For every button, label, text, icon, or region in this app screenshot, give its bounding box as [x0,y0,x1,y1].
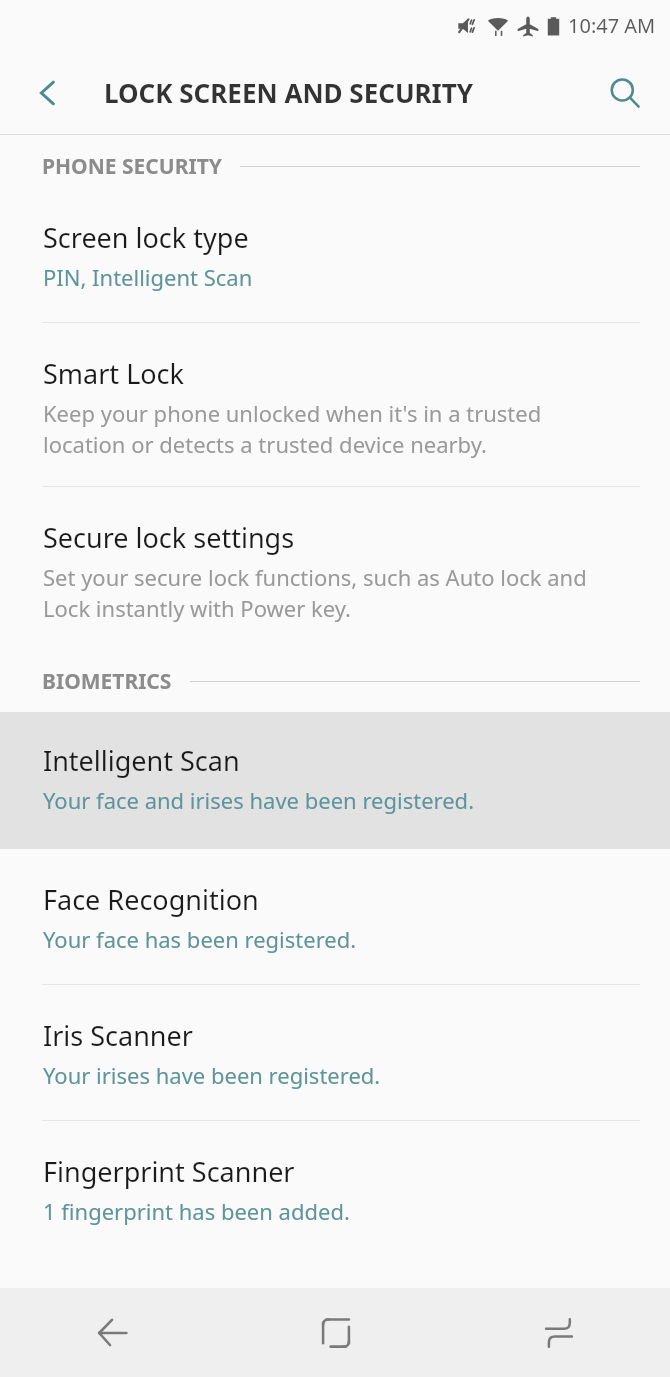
button[interactable]: Screen lock type [0,197,670,322]
button[interactable]: Smart Lock [0,323,670,486]
staticText: Set your secure lock functions, such as … [43,562,587,624]
staticText: Face Recognition [43,881,259,918]
staticText: LOCK SCREEN AND SECURITY [104,75,473,110]
staticText: Secure lock settings [43,519,295,556]
button[interactable]: Recents [447,1288,670,1377]
button[interactable]: Search [580,50,670,135]
staticText: PIN, Intelligent Scan [43,262,253,292]
staticText: BIOMETRICS [42,667,172,696]
button[interactable]: Back [0,1288,224,1377]
staticText: Iris Scanner [43,1017,193,1054]
button[interactable]: Back [0,50,95,135]
staticText: Fingerprint Scanner [43,1153,295,1190]
staticText: Smart Lock [43,355,184,392]
button[interactable]: Intelligent Scan [0,712,670,849]
button[interactable]: Fingerprint Scanner [0,1121,670,1256]
button[interactable]: Home [224,1288,447,1377]
button[interactable]: Face Recognition [0,849,670,984]
button[interactable]: Secure lock settings [0,487,670,650]
staticText: Screen lock type [43,219,249,256]
staticText: Keep your phone unlocked when it's in a … [43,398,542,460]
staticText: Intelligent Scan [43,742,240,779]
staticText: Your irises have been registered. [43,1060,381,1090]
staticText: 10:47 AM [568,12,656,39]
staticText: Your face and irises have been registere… [43,785,475,815]
staticText: PHONE SECURITY [42,152,222,181]
staticText: 1 fingerprint has been added. [43,1196,350,1226]
button[interactable]: Iris Scanner [0,985,670,1120]
staticText: Your face has been registered. [43,924,357,954]
